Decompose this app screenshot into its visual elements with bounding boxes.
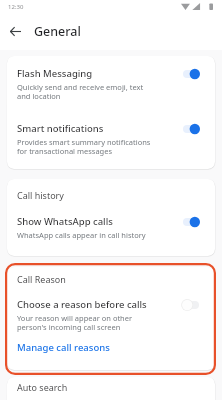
button[interactable]: Choose a reason before calls — [7, 298, 215, 332]
staticText: Provides smart summary notifications for… — [17, 137, 151, 156]
staticText: Smart notifications — [17, 122, 104, 135]
staticText: Your reason will appear on other person'… — [17, 313, 133, 332]
button[interactable]: Flash Messaging — [7, 67, 215, 101]
button[interactable]: Show WhatsApp calls — [7, 215, 215, 240]
staticText: WhatsApp calls appear in call history — [17, 230, 146, 240]
staticText: Auto search — [17, 381, 68, 393]
staticText: Call history — [17, 189, 64, 201]
button[interactable]: Smart notifications — [7, 122, 215, 156]
staticText: 12:30 — [8, 3, 24, 11]
button[interactable]: Back — [5, 21, 25, 41]
button[interactable]: Toggle on — [183, 213, 205, 231]
staticText: Call Reason — [17, 273, 66, 285]
staticText: Quickly send and receive emoji, text and… — [17, 82, 144, 101]
staticText: Manage call reasons — [17, 341, 110, 354]
staticText: Show WhatsApp calls — [17, 215, 113, 228]
staticText: Flash Messaging — [17, 67, 93, 80]
button[interactable]: Toggle off — [183, 296, 205, 314]
staticText: Choose a reason before calls — [17, 298, 147, 311]
button[interactable]: Toggle on — [183, 65, 205, 83]
button[interactable]: Manage call reasons — [7, 340, 215, 360]
button[interactable]: Toggle on — [183, 120, 205, 138]
staticText: General — [34, 23, 81, 40]
